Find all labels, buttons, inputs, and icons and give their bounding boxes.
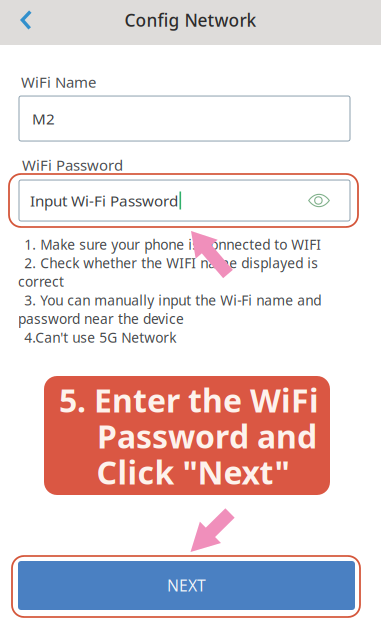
staticText: Password and bbox=[97, 414, 317, 458]
staticText: correct bbox=[18, 272, 64, 291]
staticText: 4.Can't use 5G Network bbox=[24, 328, 176, 347]
staticText: Input Wi-Fi Password bbox=[30, 190, 178, 211]
staticText: password near the device bbox=[18, 309, 184, 328]
staticText: 5. Enter the WiFi bbox=[59, 378, 319, 422]
staticText: WiFi Name bbox=[21, 72, 96, 92]
staticText: 1. Make sure your phone is connected to … bbox=[24, 235, 321, 254]
staticText: WiFi Password bbox=[22, 155, 123, 175]
staticText: NEXT bbox=[167, 575, 206, 596]
staticText: 2. Check whether the WIFI name displayed… bbox=[24, 253, 318, 272]
staticText: Config Network bbox=[124, 8, 256, 32]
button[interactable]: NEXT bbox=[18, 561, 355, 610]
button[interactable]: Back bbox=[0, 0, 52, 40]
staticText: 3. You can manually input the Wi-Fi name… bbox=[24, 291, 321, 309]
staticText: M2 bbox=[32, 108, 55, 129]
staticText: Click "Next" bbox=[96, 450, 289, 494]
